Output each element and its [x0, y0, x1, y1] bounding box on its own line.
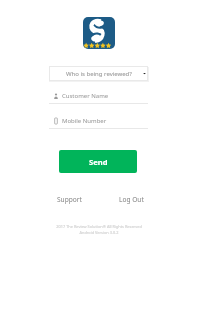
staticText: Android Version 3.0.2	[79, 230, 119, 235]
staticText: Customer Name	[62, 92, 109, 100]
staticText: Who is being reviewed?	[66, 70, 132, 78]
staticText: Log Out	[119, 195, 144, 204]
button[interactable]: Send	[59, 150, 137, 173]
button[interactable]: Customer Name	[49, 92, 148, 104]
button[interactable]: Support	[54, 193, 85, 206]
staticText: Support	[57, 195, 82, 204]
button[interactable]: Mobile Number	[49, 117, 148, 129]
button[interactable]: Log Out	[116, 193, 147, 206]
other: The Review Solution logo	[83, 17, 115, 49]
staticText: Send	[89, 157, 108, 167]
button[interactable]: Who is being reviewed?	[49, 66, 148, 81]
staticText: Mobile Number	[62, 117, 107, 125]
staticText: 2017 The Review Solution® All Rights Res…	[56, 224, 142, 229]
